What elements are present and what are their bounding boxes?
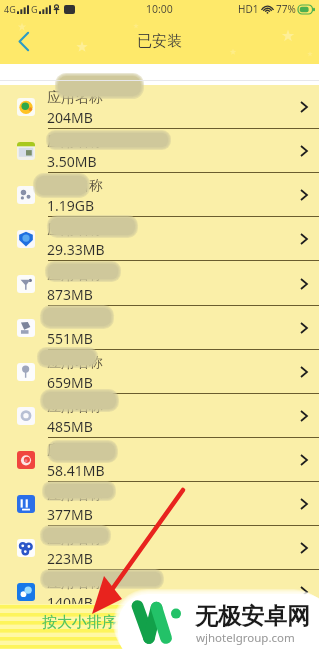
staticText: G (31, 3, 38, 15)
staticText: 1.19GB (47, 196, 95, 215)
staticText: 应用名称 (47, 177, 103, 195)
button[interactable]: 应用名称 (0, 526, 319, 570)
staticText: 377MB (47, 505, 93, 524)
staticText: 3.50MB (47, 152, 97, 171)
staticText: 10:00 (146, 2, 173, 16)
staticText: 204MB (47, 108, 93, 127)
staticText: 应用名称 (47, 442, 103, 460)
staticText: 已安装 (137, 32, 182, 51)
staticText: 按大小排序 (42, 613, 117, 632)
staticText: 223MB (47, 549, 93, 568)
button[interactable]: Back (6, 24, 40, 58)
staticText: 应用名称 (47, 530, 103, 548)
staticText: 应用名称 (47, 486, 103, 504)
button[interactable]: 应用名称 (0, 173, 319, 217)
staticText: wjhotelgroup.com (196, 630, 295, 646)
staticText: 659MB (47, 373, 93, 392)
staticText: 873MB (47, 285, 93, 304)
staticText: HD1 (238, 2, 259, 16)
button[interactable]: 应用名称 (0, 306, 319, 350)
staticText: 485MB (47, 417, 93, 436)
staticText: 4G (4, 3, 16, 15)
staticText: 应用名称 (47, 266, 103, 284)
button[interactable]: 应用名称 (0, 217, 319, 261)
staticText: 无极安卓网 (195, 602, 310, 631)
staticText: 应用名称 (47, 89, 103, 107)
button[interactable]: 应用名称 (0, 85, 319, 129)
button[interactable]: 应用名称 (0, 570, 319, 614)
staticText: 140MB (47, 593, 93, 612)
button[interactable]: 应用名称 (0, 482, 319, 526)
staticText: 应用名称 (47, 221, 103, 239)
staticText: 应用名称 (47, 133, 103, 151)
staticText: 应用名称 (47, 574, 103, 592)
staticText: 551MB (47, 329, 93, 348)
staticText: 应用名称 (47, 354, 103, 372)
button[interactable]: 应用名称 (0, 350, 319, 394)
staticText: 应用名称 (47, 310, 103, 328)
staticText: 29.33MB (47, 240, 105, 259)
staticText: 77% (276, 2, 296, 16)
button[interactable]: 应用名称 (0, 438, 319, 482)
button[interactable]: 应用名称 (0, 394, 319, 438)
button[interactable]: 应用名称 (0, 129, 319, 173)
staticText: 58.41MB (47, 461, 105, 480)
button[interactable]: 按大小排序 (0, 604, 319, 649)
button[interactable]: 应用名称 (0, 262, 319, 306)
staticText: 应用名称 (47, 398, 103, 416)
